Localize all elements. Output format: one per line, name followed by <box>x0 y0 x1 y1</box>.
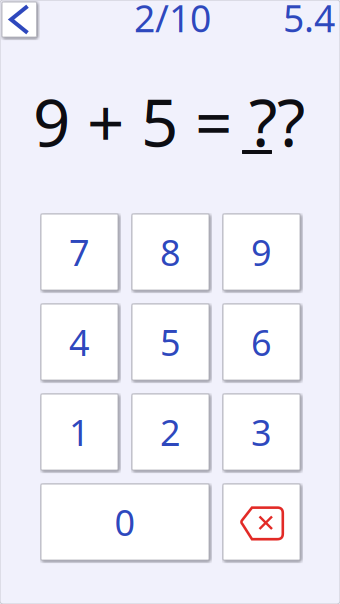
button[interactable]: 1 <box>41 394 118 470</box>
button[interactable]: 8 <box>132 214 209 290</box>
button[interactable]: Delete <box>223 484 300 560</box>
staticText: 5 <box>160 318 181 366</box>
staticText: 3 <box>251 408 272 456</box>
staticText: 2 <box>160 408 181 456</box>
staticText: 8 <box>160 228 181 276</box>
button[interactable]: Back <box>2 2 36 37</box>
staticText: 2/10 <box>134 0 211 43</box>
staticText: 6 <box>251 318 272 366</box>
button[interactable]: 4 <box>41 304 118 380</box>
button[interactable]: 6 <box>223 304 300 380</box>
staticText: 5.4 <box>283 0 335 43</box>
staticText: 0 <box>114 498 135 546</box>
staticText: 4 <box>69 318 90 366</box>
button[interactable]: 7 <box>41 214 118 290</box>
staticText: 9 <box>251 228 272 276</box>
staticText: 7 <box>69 228 90 276</box>
button[interactable]: 2 <box>132 394 209 470</box>
button[interactable]: 3 <box>223 394 300 470</box>
staticText: 1 <box>69 408 90 456</box>
staticText: 9 + 5 = ?? <box>33 78 305 165</box>
button[interactable]: 5 <box>132 304 209 380</box>
button[interactable]: 0 <box>41 484 209 560</box>
button[interactable]: 9 <box>223 214 300 290</box>
